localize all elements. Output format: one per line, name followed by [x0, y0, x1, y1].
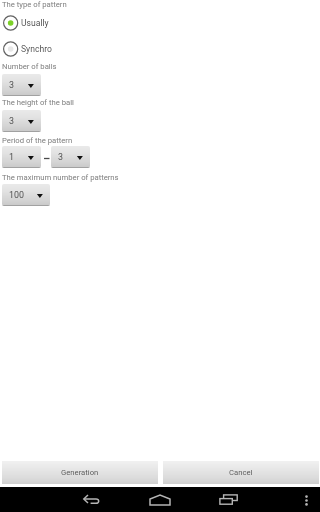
button[interactable]: Synchro	[0, 39, 72, 59]
staticText: 100	[9, 190, 24, 200]
button[interactable]: Generation	[2, 461, 158, 484]
staticText: The type of pattern	[2, 0, 67, 9]
button[interactable]: 3	[51, 146, 90, 168]
button[interactable]: 100	[2, 184, 50, 206]
button[interactable]: Usually	[0, 13, 72, 33]
button[interactable]: More options	[303, 495, 310, 506]
staticText: Period of the pattern	[2, 136, 73, 145]
staticText: The height of the ball	[2, 98, 74, 107]
button[interactable]: 3	[2, 74, 41, 96]
staticText: 3	[9, 116, 14, 126]
staticText: 3	[9, 80, 14, 90]
button[interactable]: 3	[2, 110, 41, 132]
button[interactable]: Recent apps	[219, 494, 238, 505]
staticText: Cancel	[229, 468, 253, 477]
staticText: Number of balls	[2, 62, 57, 71]
staticText: 1	[9, 152, 14, 162]
staticText: Usually	[21, 18, 49, 28]
staticText: Synchro	[21, 44, 52, 54]
button[interactable]: 1	[2, 146, 41, 168]
staticText: 3	[58, 152, 63, 162]
staticText: Generation	[61, 468, 99, 477]
button[interactable]: Home	[149, 494, 171, 506]
button[interactable]: Back	[83, 491, 102, 507]
staticText: The maximum number of patterns	[2, 173, 119, 182]
button[interactable]: Cancel	[163, 461, 319, 484]
